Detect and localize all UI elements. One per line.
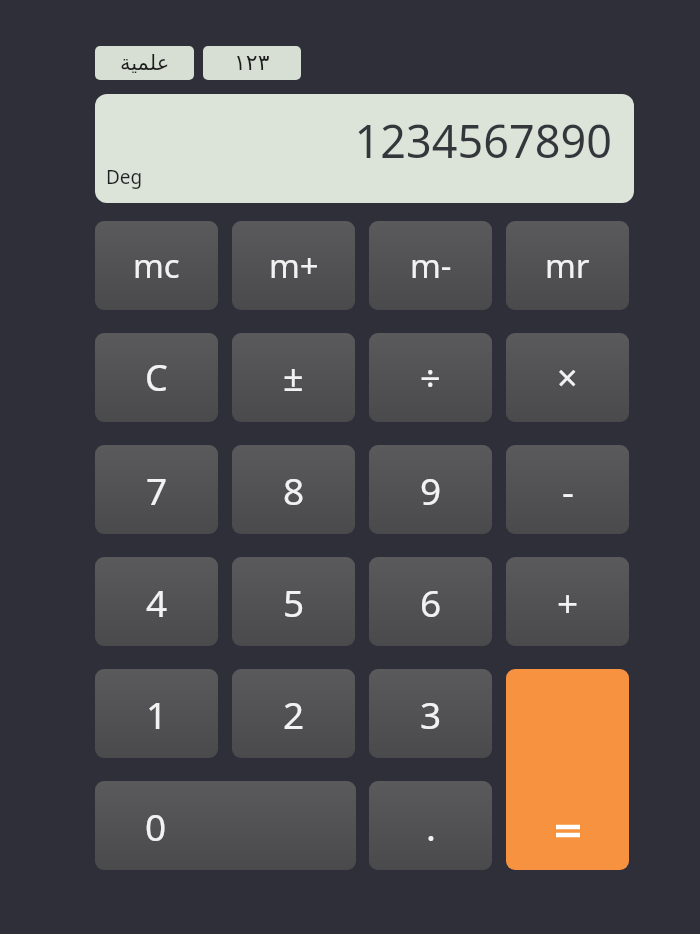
- button[interactable]: +: [506, 557, 629, 646]
- staticText: m+: [269, 243, 319, 288]
- staticText: m-: [410, 243, 452, 288]
- staticText: ١٢٣: [234, 50, 270, 76]
- staticText: ×: [557, 353, 578, 402]
- staticText: 1: [146, 689, 168, 739]
- button[interactable]: ١٢٣: [203, 46, 301, 80]
- staticText: 6: [420, 577, 442, 627]
- staticText: +: [557, 577, 579, 627]
- button[interactable]: 1234567890: [95, 94, 634, 203]
- button[interactable]: mc: [95, 221, 218, 310]
- button[interactable]: 3: [369, 669, 492, 758]
- staticText: mc: [133, 243, 180, 288]
- button[interactable]: C: [95, 333, 218, 422]
- button[interactable]: ÷: [369, 333, 492, 422]
- button[interactable]: 1: [95, 669, 218, 758]
- staticText: 4: [146, 577, 168, 627]
- button[interactable]: mr: [506, 221, 629, 310]
- button[interactable]: 4: [95, 557, 218, 646]
- button[interactable]: 5: [232, 557, 355, 646]
- staticText: C: [145, 353, 168, 402]
- button[interactable]: m+: [232, 221, 355, 310]
- staticText: 5: [283, 577, 305, 627]
- staticText: 1234567890: [354, 110, 612, 171]
- staticText: 0: [145, 801, 167, 851]
- button[interactable]: 9: [369, 445, 492, 534]
- staticText: Deg: [106, 164, 143, 190]
- staticText: 3: [420, 689, 442, 739]
- button[interactable]: 0: [95, 781, 356, 870]
- button[interactable]: 2: [232, 669, 355, 758]
- button[interactable]: علمية: [95, 46, 194, 80]
- button[interactable]: 6: [369, 557, 492, 646]
- button[interactable]: -: [506, 445, 629, 534]
- button[interactable]: m-: [369, 221, 492, 310]
- staticText: 8: [283, 465, 305, 515]
- button[interactable]: Equals: [506, 669, 629, 870]
- staticText: 2: [283, 689, 305, 739]
- button[interactable]: .: [369, 781, 492, 870]
- button[interactable]: 8: [232, 445, 355, 534]
- button[interactable]: 7: [95, 445, 218, 534]
- staticText: -: [562, 465, 574, 515]
- staticText: ÷: [420, 353, 441, 402]
- staticText: 7: [146, 465, 168, 515]
- button[interactable]: ±: [232, 333, 355, 422]
- staticText: .: [426, 801, 436, 851]
- staticText: mr: [545, 243, 590, 288]
- staticText: 9: [420, 465, 442, 515]
- staticText: علمية: [120, 51, 170, 75]
- staticText: ±: [283, 353, 304, 402]
- button[interactable]: ×: [506, 333, 629, 422]
